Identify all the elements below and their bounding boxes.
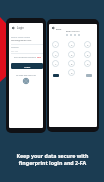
staticText: 9	[87, 62, 89, 65]
staticText: Login	[17, 26, 24, 30]
staticText: mymail@gmail.com	[11, 39, 32, 42]
other: Back	[11, 26, 15, 30]
button[interactable]: Don't remember password?	[14, 56, 41, 58]
staticText: 2	[71, 43, 73, 46]
button[interactable]: 2	[68, 41, 75, 48]
button[interactable]: 1	[52, 41, 59, 48]
staticText: Help	[37, 56, 41, 58]
button[interactable]: Back	[11, 26, 24, 30]
staticText: 7	[55, 62, 57, 65]
button[interactable]: 9	[84, 60, 91, 67]
staticText: 3	[87, 43, 89, 46]
staticText: 4	[55, 53, 57, 56]
staticText: Password	[11, 46, 19, 48]
staticText: 6	[87, 53, 89, 56]
button[interactable]: 0	[68, 69, 75, 76]
button[interactable]: 7	[52, 60, 59, 67]
button[interactable]: Fingerprint login	[23, 78, 29, 84]
staticText: • • • • • •	[11, 50, 19, 53]
staticText: 5	[71, 53, 73, 56]
button[interactable]: Delete	[86, 74, 92, 77]
button[interactable]: Login	[11, 63, 43, 69]
staticText: 8	[71, 62, 73, 65]
other: Back	[51, 26, 55, 30]
button[interactable]: Confirm PIN	[53, 74, 59, 77]
staticText: Keep your data secure with fingerprint l…	[16, 152, 89, 166]
staticText: Login	[24, 65, 31, 68]
staticText: 0	[71, 71, 73, 74]
staticText: Email or Phone Number	[11, 36, 31, 38]
staticText: Or login with Touch ID	[16, 74, 36, 77]
button[interactable]: Back	[51, 26, 62, 30]
button[interactable]: 4	[52, 51, 59, 58]
button[interactable]: 6	[84, 51, 91, 58]
staticText: Don't remember password?	[14, 56, 37, 58]
staticText: Enter your PIN	[66, 30, 80, 33]
staticText: Back	[56, 27, 62, 30]
staticText: 1	[55, 43, 57, 46]
button[interactable]: 3	[84, 41, 91, 48]
button[interactable]: 8	[68, 60, 75, 67]
button[interactable]: 5	[68, 51, 75, 58]
